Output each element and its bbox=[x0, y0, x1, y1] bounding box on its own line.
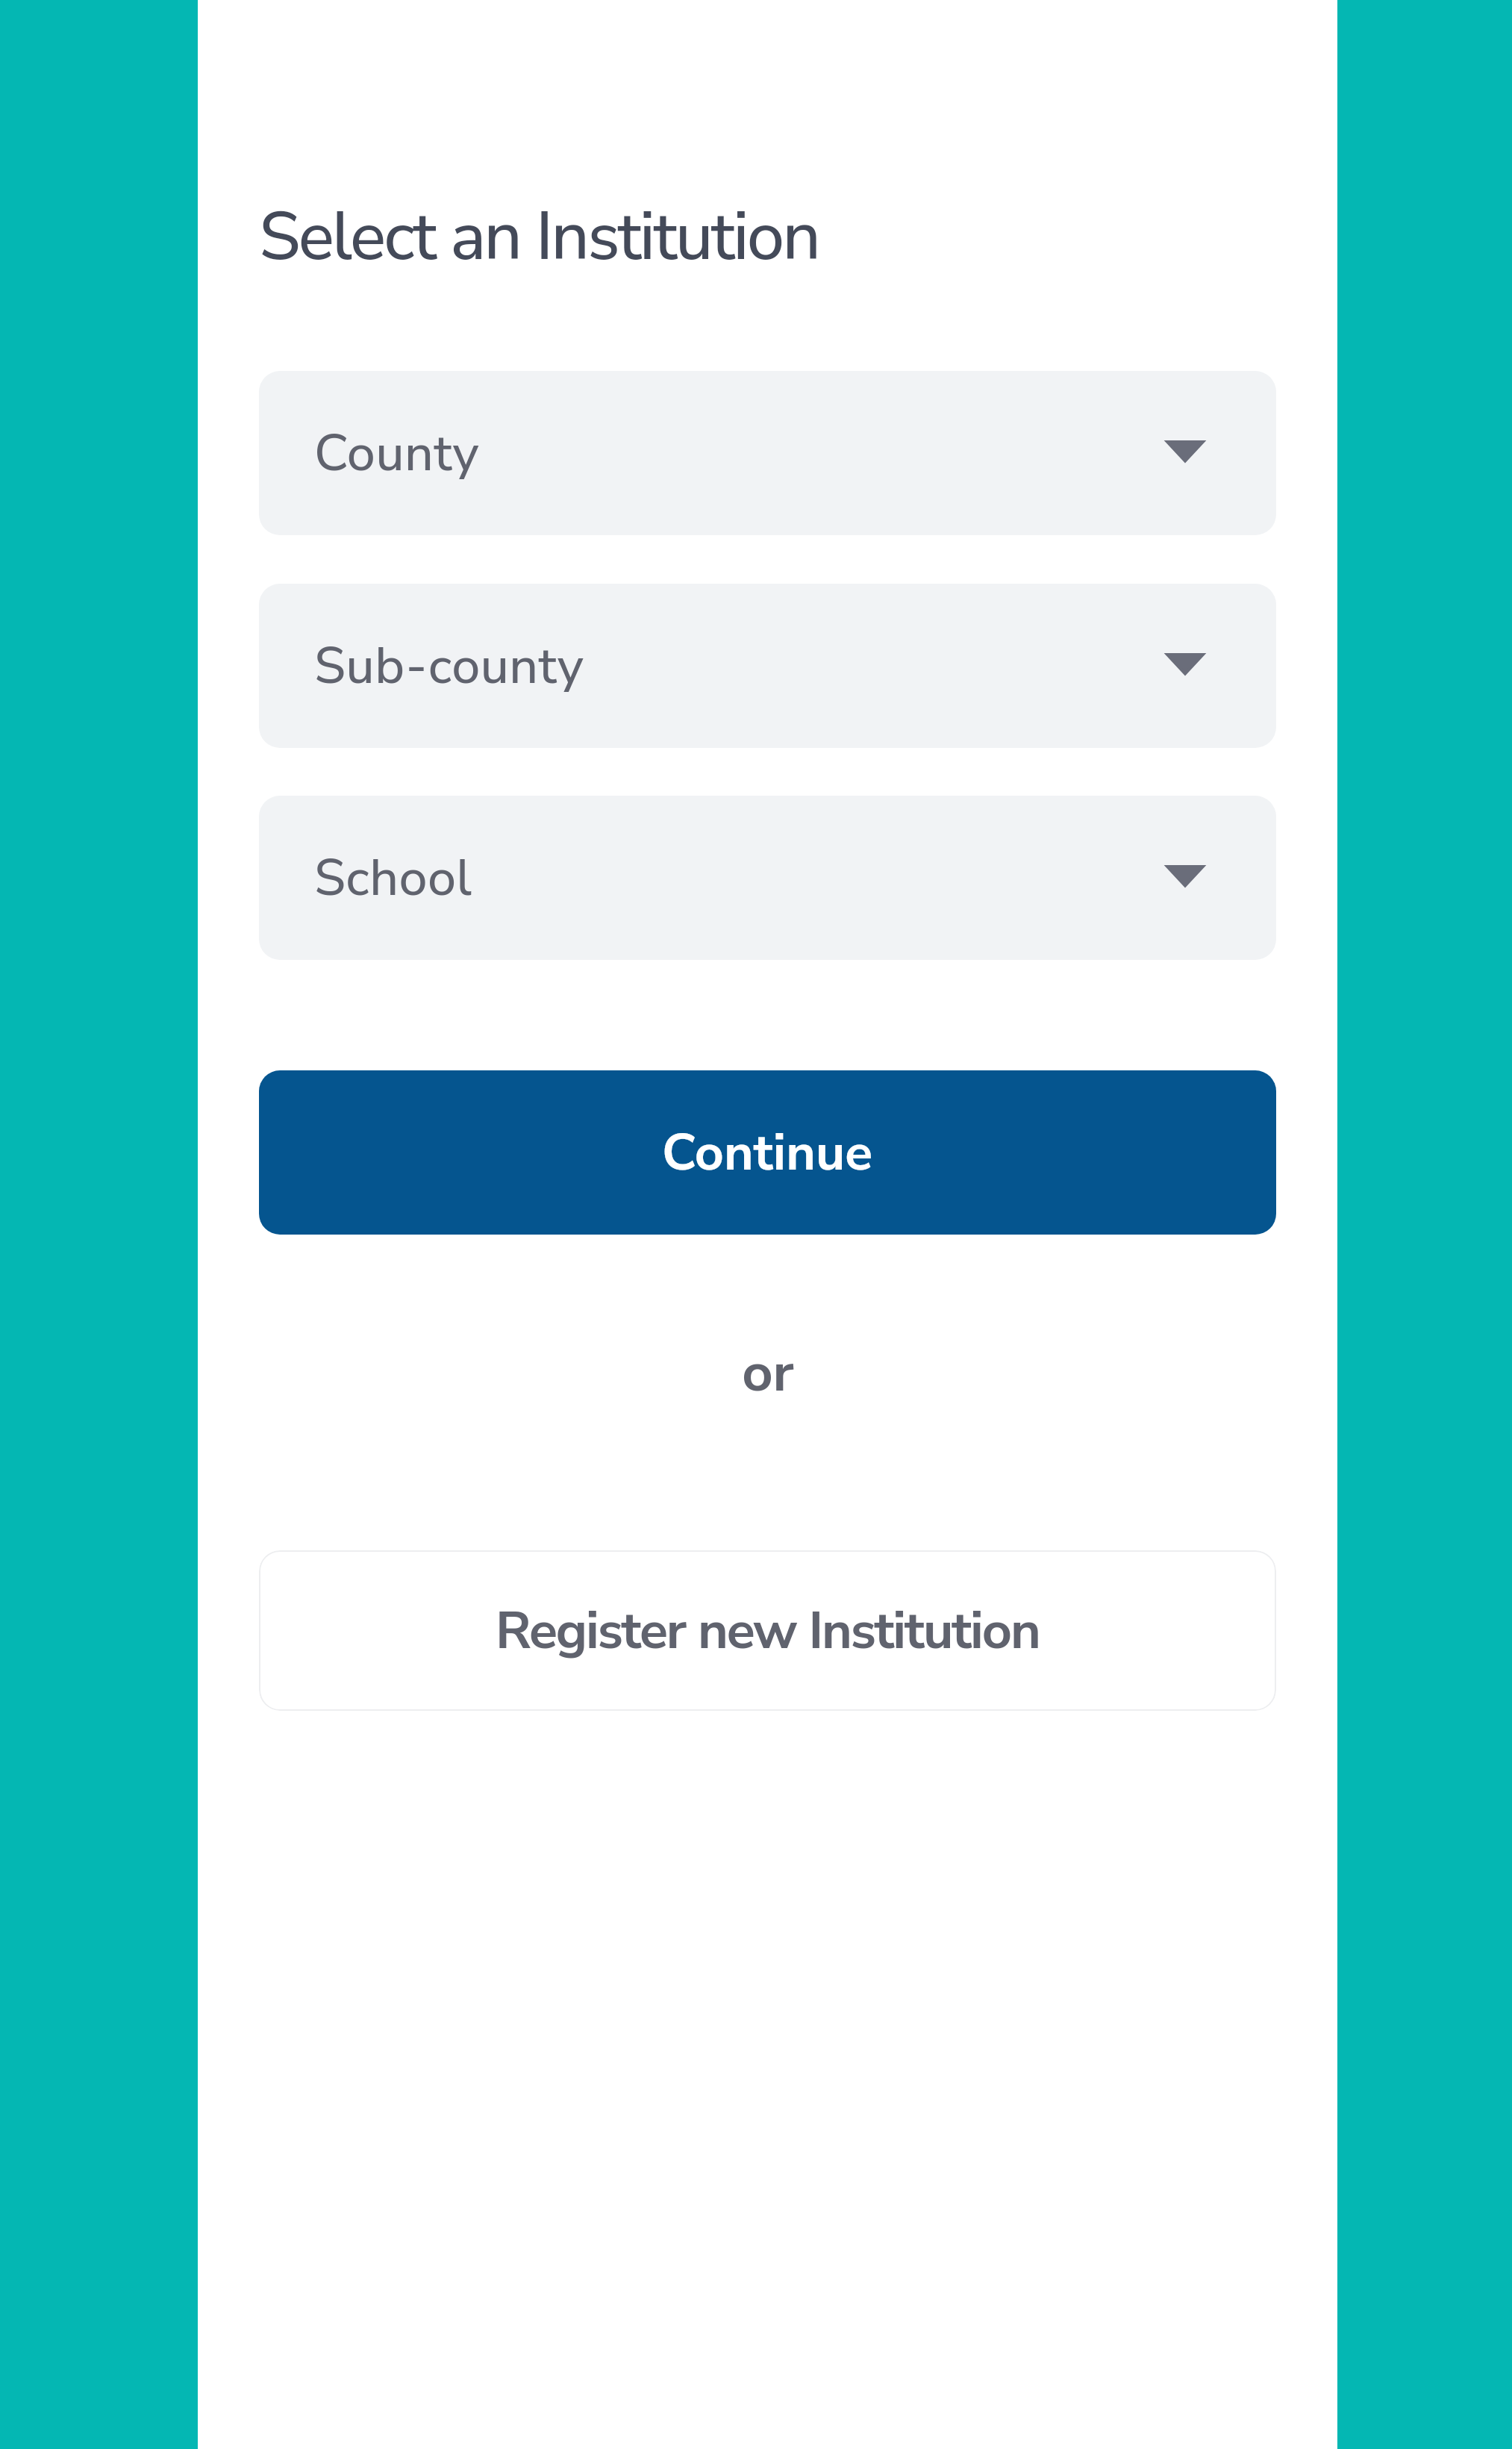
button[interactable]: Register new Institution bbox=[259, 1550, 1276, 1711]
staticText: Sub-county bbox=[314, 631, 584, 701]
button[interactable]: Sub-county bbox=[259, 584, 1276, 748]
staticText: or bbox=[742, 1336, 794, 1409]
button[interactable]: Open County list bbox=[1145, 413, 1225, 493]
button[interactable]: School bbox=[259, 796, 1276, 960]
button[interactable]: Continue bbox=[259, 1070, 1276, 1235]
button[interactable]: Open School list bbox=[1145, 837, 1225, 918]
button[interactable]: County bbox=[259, 371, 1276, 535]
staticText: Continue bbox=[662, 1118, 873, 1188]
staticText: County bbox=[314, 419, 479, 488]
staticText: Select an Institution bbox=[259, 191, 819, 283]
staticText: School bbox=[314, 843, 472, 913]
staticText: Register new Institution bbox=[496, 1595, 1040, 1666]
button[interactable]: Open Sub-county list bbox=[1145, 625, 1225, 706]
